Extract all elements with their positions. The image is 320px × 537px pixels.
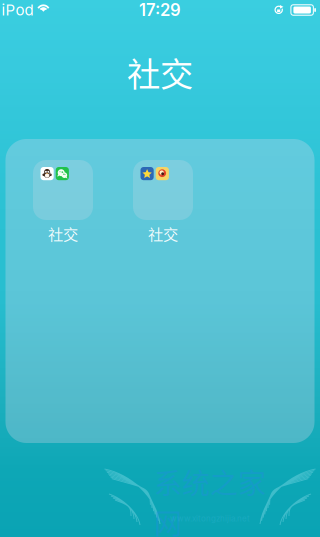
button[interactable]: 社交 — [13, 160, 113, 237]
staticText: 社交 — [127, 48, 193, 96]
staticText: 社交 — [148, 222, 178, 245]
button[interactable]: 社交 — [113, 160, 213, 237]
staticText: iPod — [1, 1, 33, 19]
staticText: www.xitongzhijia.net — [170, 514, 250, 523]
staticText: 系统之家网 — [154, 461, 266, 537]
staticText: 17:29 — [139, 0, 181, 20]
staticText: 社交 — [48, 222, 78, 245]
